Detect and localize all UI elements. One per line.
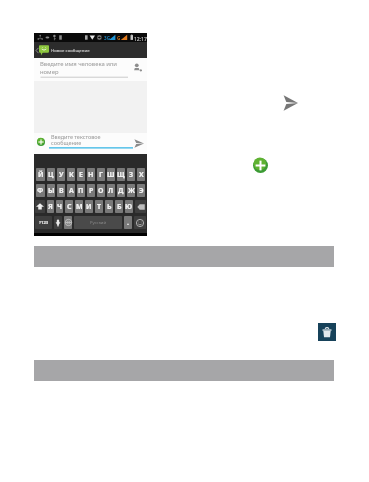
staticText: Л [108, 186, 114, 196]
staticText: Ь [107, 202, 112, 212]
button[interactable]: В [57, 184, 65, 197]
staticText: Н [88, 170, 94, 180]
button[interactable]: К [67, 168, 75, 181]
staticText: Введите имя человека или номер [40, 60, 117, 76]
button[interactable]: Ю [125, 200, 133, 213]
staticText: Х [139, 170, 144, 180]
button[interactable]: И [85, 200, 93, 213]
button[interactable]: Ш [107, 168, 115, 181]
staticText: М [76, 202, 83, 212]
staticText: G [117, 35, 121, 41]
button[interactable]: М [75, 200, 83, 213]
button[interactable]: Щ [117, 168, 125, 181]
staticText: Б [117, 202, 122, 212]
button[interactable]: Ж [127, 184, 135, 197]
staticText: П [78, 186, 84, 196]
button[interactable]: Т [95, 200, 103, 213]
button[interactable]: Ь [105, 200, 113, 213]
staticText: Г [99, 170, 103, 180]
staticText: Д [118, 186, 124, 196]
button[interactable]: Ч [56, 200, 63, 213]
button[interactable]: Г [97, 168, 105, 181]
button[interactable]: С [65, 200, 73, 213]
button[interactable]: Backspace [135, 200, 146, 213]
button[interactable]: Send [134, 139, 144, 148]
button[interactable]: Shift [35, 200, 45, 213]
staticText: И [86, 202, 92, 212]
button[interactable]: Й [36, 168, 45, 181]
staticText: А [69, 186, 74, 196]
button[interactable]: Back [35, 47, 39, 54]
staticText: К [69, 170, 74, 180]
button[interactable]: Add contact [133, 63, 142, 72]
button[interactable]: Р [87, 184, 95, 197]
staticText: Ч [57, 202, 63, 212]
staticText: Ж [128, 186, 135, 196]
staticText: Новое сообщение [51, 47, 90, 53]
staticText: Введите текстовое сообщение [51, 133, 101, 146]
button[interactable]: . [124, 216, 132, 229]
button[interactable]: Н [87, 168, 95, 181]
button[interactable]: З [127, 168, 135, 181]
staticText: О [98, 186, 104, 196]
staticText: Т [97, 202, 102, 212]
button[interactable]: П [77, 184, 85, 197]
button[interactable]: Е [77, 168, 85, 181]
button[interactable]: Emoji [134, 216, 146, 229]
button[interactable]: Русский [74, 216, 122, 229]
staticText: З [129, 170, 134, 180]
button[interactable]: О [97, 184, 105, 197]
staticText: Я [48, 202, 53, 212]
button[interactable]: Add attachment [253, 158, 268, 173]
staticText: 3G [104, 35, 110, 41]
staticText: ?123 [39, 220, 49, 226]
button[interactable]: Add attachment [37, 138, 45, 146]
button[interactable]: Delete [318, 323, 336, 341]
staticText: Ц [48, 170, 54, 180]
staticText: 12:17 [134, 35, 147, 42]
button[interactable]: Send message [283, 95, 298, 111]
staticText: У [59, 170, 64, 180]
staticText: . [127, 218, 129, 228]
button[interactable]: Change language [64, 216, 72, 229]
button[interactable]: У [57, 168, 65, 181]
staticText: Р [89, 186, 94, 196]
staticText: Щ [117, 170, 125, 180]
button[interactable]: Б [115, 200, 123, 213]
staticText: С [67, 202, 72, 212]
button[interactable]: Э [137, 184, 145, 197]
staticText: Ш [107, 170, 115, 180]
button[interactable]: Я [47, 200, 54, 213]
staticText: Ю [125, 202, 133, 212]
button[interactable]: Ф [36, 184, 45, 197]
staticText: Ф [37, 186, 44, 196]
button[interactable]: Voice input [54, 216, 62, 229]
staticText: Э [139, 186, 144, 196]
staticText: Русский [90, 220, 107, 226]
button[interactable]: А [67, 184, 75, 197]
staticText: Ы [48, 186, 55, 196]
button[interactable]: Д [117, 184, 125, 197]
button[interactable]: ?123 [35, 216, 52, 229]
staticText: Й [38, 170, 44, 180]
button[interactable]: Ы [47, 184, 55, 197]
staticText: В [59, 186, 64, 196]
button[interactable]: Л [107, 184, 115, 197]
button[interactable]: Ц [47, 168, 55, 181]
button[interactable]: Х [137, 168, 145, 181]
staticText: Е [79, 170, 83, 180]
